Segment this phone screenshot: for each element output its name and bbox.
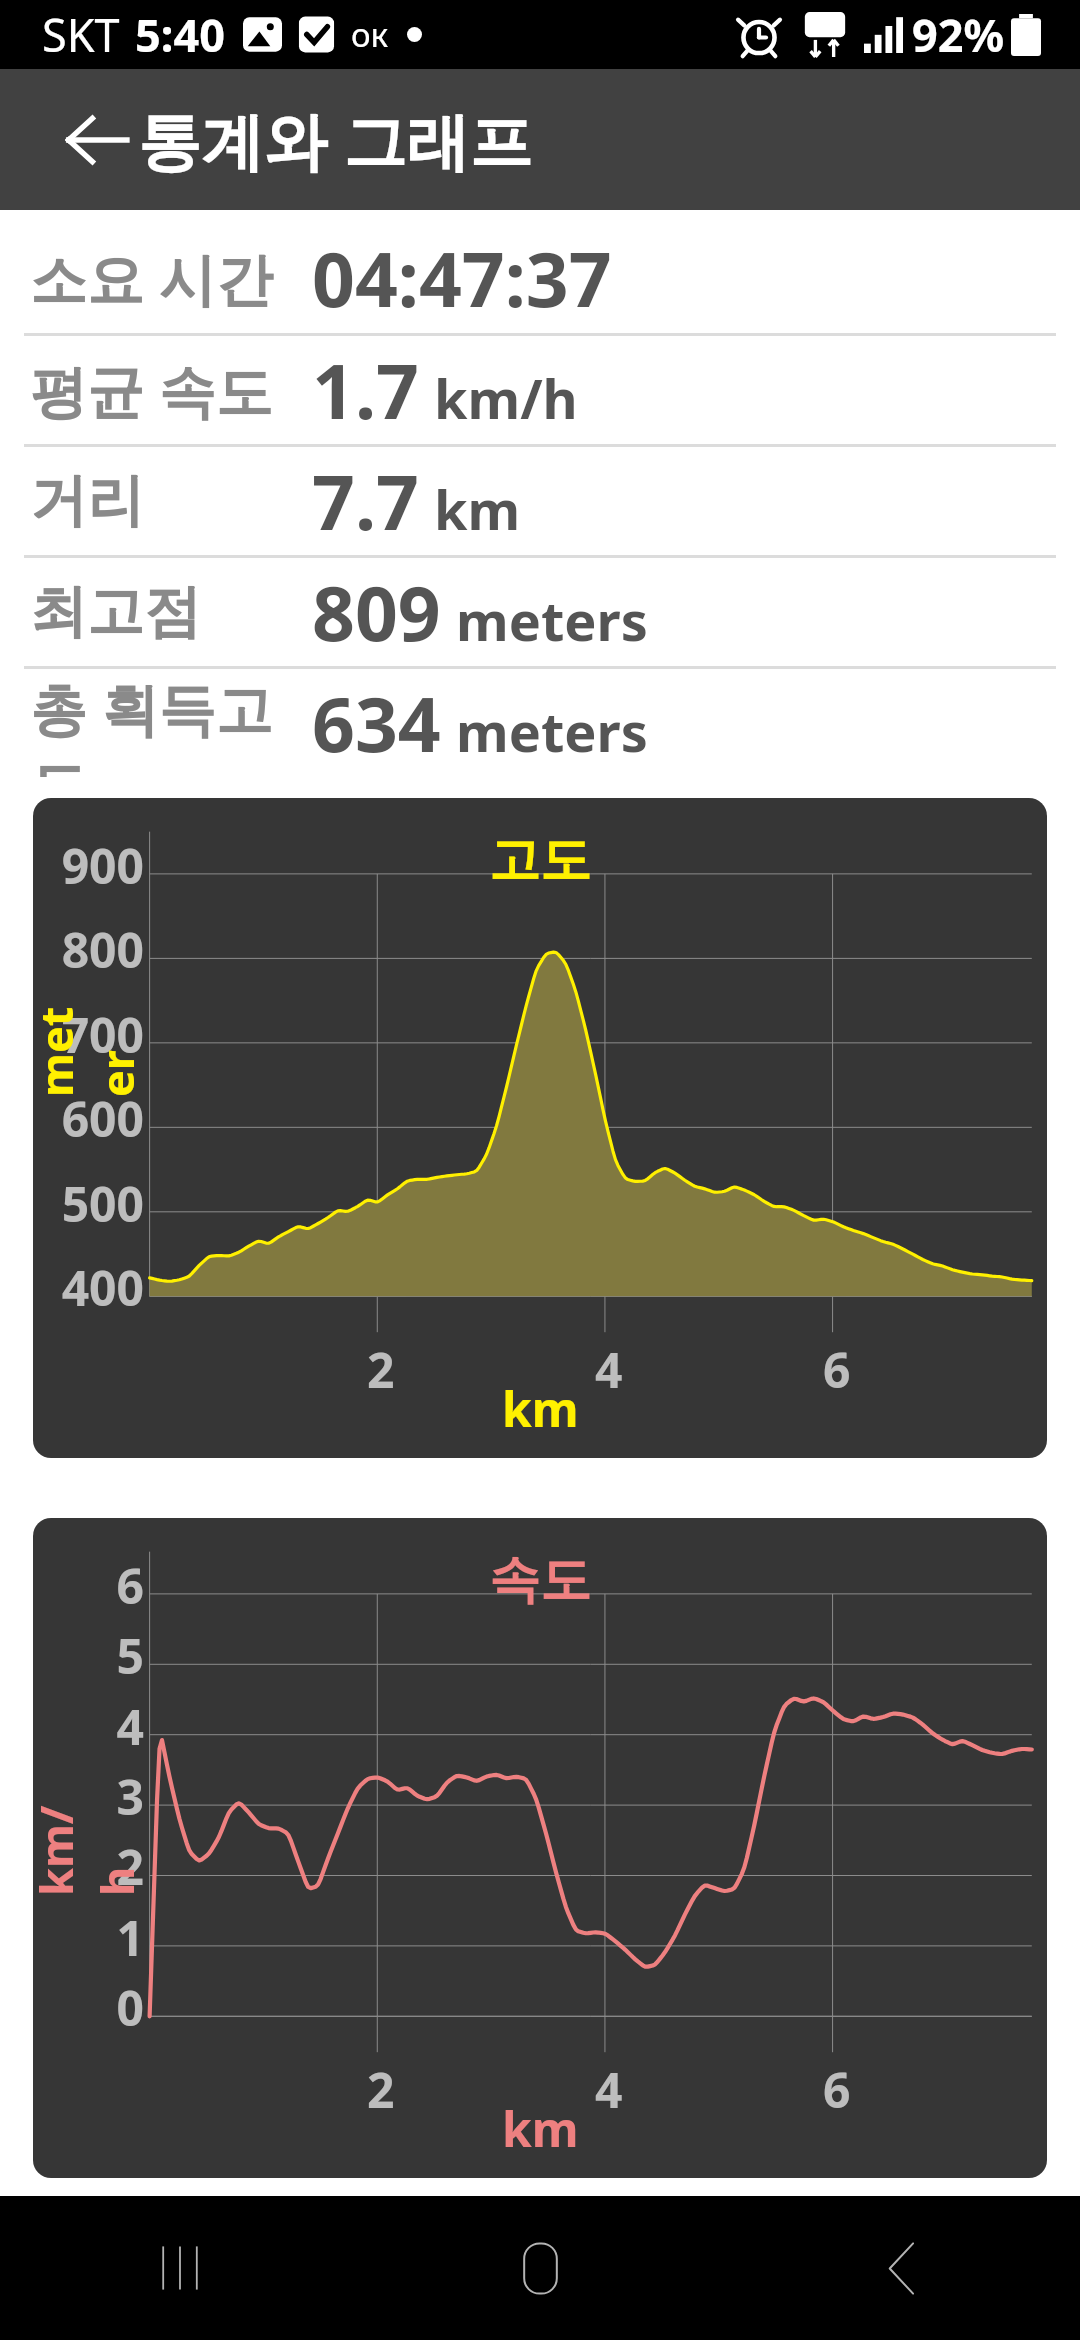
staticText: 6 bbox=[823, 2057, 851, 2122]
staticText: 2 bbox=[367, 1337, 395, 1402]
staticText: 속도 bbox=[489, 1548, 591, 1612]
staticText: 600 bbox=[61, 1086, 144, 1151]
staticText: 통계와 그래프 bbox=[138, 97, 533, 183]
button[interactable]: 총 획득고도 bbox=[0, 669, 1080, 777]
button[interactable]: 평균 속도 bbox=[0, 336, 1080, 444]
button[interactable]: 최고점 bbox=[0, 558, 1080, 666]
staticText: 5 bbox=[116, 1623, 144, 1688]
staticText: 04:47:37 bbox=[312, 227, 612, 329]
staticText: 1.7 bbox=[312, 339, 419, 441]
staticText: 3 bbox=[116, 1764, 144, 1829]
button[interactable]: 고도 bbox=[33, 798, 1047, 1458]
staticText: 평균 속도 bbox=[30, 351, 294, 429]
staticText: 809 bbox=[312, 561, 441, 663]
button[interactable]: 거리 bbox=[0, 447, 1080, 555]
button[interactable]: Recent apps bbox=[0, 2196, 360, 2340]
staticText: meters bbox=[456, 583, 648, 657]
staticText: 최고점 bbox=[30, 576, 294, 648]
staticText: 4 bbox=[116, 1694, 144, 1759]
staticText: 900 bbox=[61, 833, 144, 898]
button[interactable]: Home bbox=[360, 2196, 720, 2340]
staticText: km bbox=[434, 472, 521, 546]
staticText: 500 bbox=[61, 1171, 144, 1236]
staticText: km/h bbox=[33, 1790, 147, 1896]
staticText: 634 bbox=[312, 672, 441, 774]
staticText: km bbox=[502, 1376, 579, 1441]
staticText: 소요 시간 bbox=[30, 239, 294, 317]
staticText: 92% bbox=[912, 4, 1005, 65]
staticText: 6 bbox=[116, 1553, 144, 1618]
button[interactable]: 소요 시간 bbox=[0, 222, 1080, 333]
staticText: 2 bbox=[367, 2057, 395, 2122]
staticText: 4 bbox=[595, 2057, 623, 2122]
staticText: km/h bbox=[434, 361, 578, 435]
staticText: 고도 bbox=[489, 828, 591, 892]
staticText: ок bbox=[351, 12, 389, 57]
button[interactable]: 속도 bbox=[33, 1518, 1047, 2178]
staticText: km bbox=[502, 2096, 579, 2161]
staticText: 1 bbox=[116, 1905, 144, 1970]
staticText: 700 bbox=[61, 1002, 144, 1067]
staticText: 4 bbox=[595, 1337, 623, 1402]
button[interactable]: Back bbox=[720, 2196, 1080, 2340]
staticText: SKT bbox=[42, 4, 120, 65]
staticText: 6 bbox=[823, 1337, 851, 1402]
staticText: meters bbox=[456, 694, 648, 768]
button[interactable]: Back bbox=[24, 69, 168, 210]
staticText: 800 bbox=[61, 917, 144, 982]
staticText: 거리 bbox=[30, 465, 294, 537]
staticText: 400 bbox=[61, 1255, 144, 1320]
staticText: meter bbox=[33, 991, 147, 1097]
staticText: 총 획득고도 bbox=[30, 669, 294, 777]
staticText: 2 bbox=[116, 1834, 144, 1899]
staticText: 0 bbox=[116, 1975, 144, 2040]
staticText: 5:40 bbox=[135, 4, 225, 65]
staticText: 7.7 bbox=[312, 450, 419, 552]
